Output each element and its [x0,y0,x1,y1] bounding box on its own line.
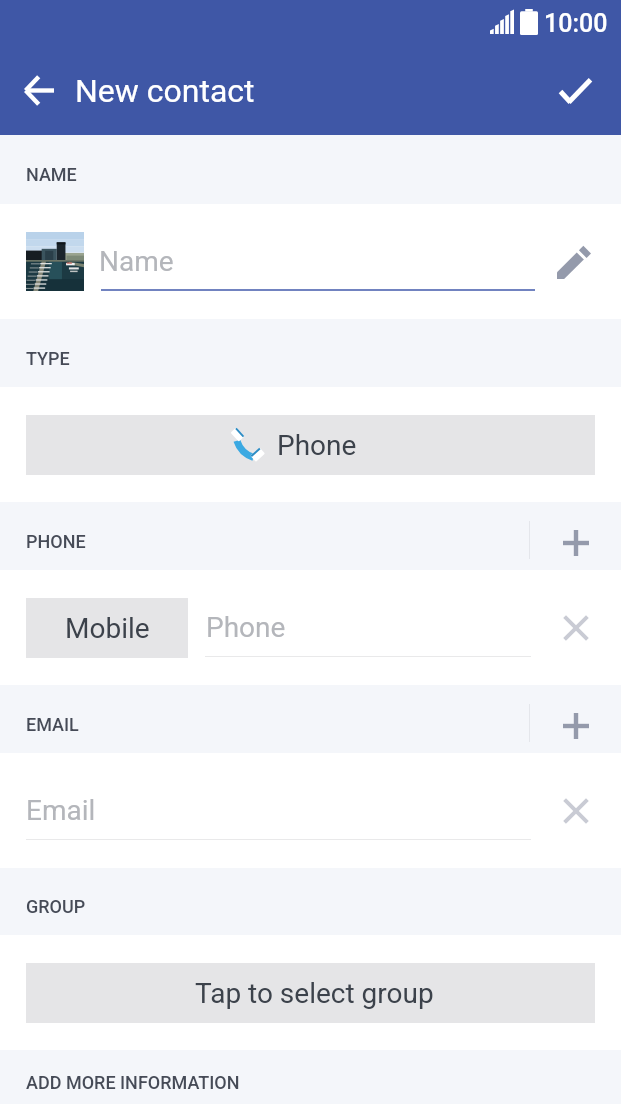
staticText: NAME [26,164,77,185]
staticText: Phone [277,429,357,462]
staticText: EMAIL [26,714,79,735]
button[interactable]: Save contact [543,58,608,123]
staticText: New contact [75,72,255,110]
button[interactable]: Tap to select group [26,963,595,1023]
button[interactable]: Add email [546,696,606,756]
staticText: Tap to select group [195,977,434,1010]
staticText: Phone [206,611,286,644]
button[interactable]: Navigate up [6,58,71,123]
button[interactable]: Clear email [546,781,606,841]
button[interactable]: Phone [26,415,595,475]
button[interactable]: Add phone [546,513,606,573]
button[interactable]: Clear phone [546,598,606,658]
staticText: Mobile [65,612,150,645]
staticText: Name [99,245,174,278]
staticText: GROUP [26,896,86,917]
staticText: ADD MORE INFORMATION [26,1072,240,1093]
button[interactable]: Edit name [542,230,606,294]
button[interactable]: Mobile [26,598,188,658]
staticText: TYPE [26,348,70,369]
staticText: Email [26,794,96,827]
staticText: PHONE [26,531,86,552]
staticText: 10:00 [544,9,608,38]
